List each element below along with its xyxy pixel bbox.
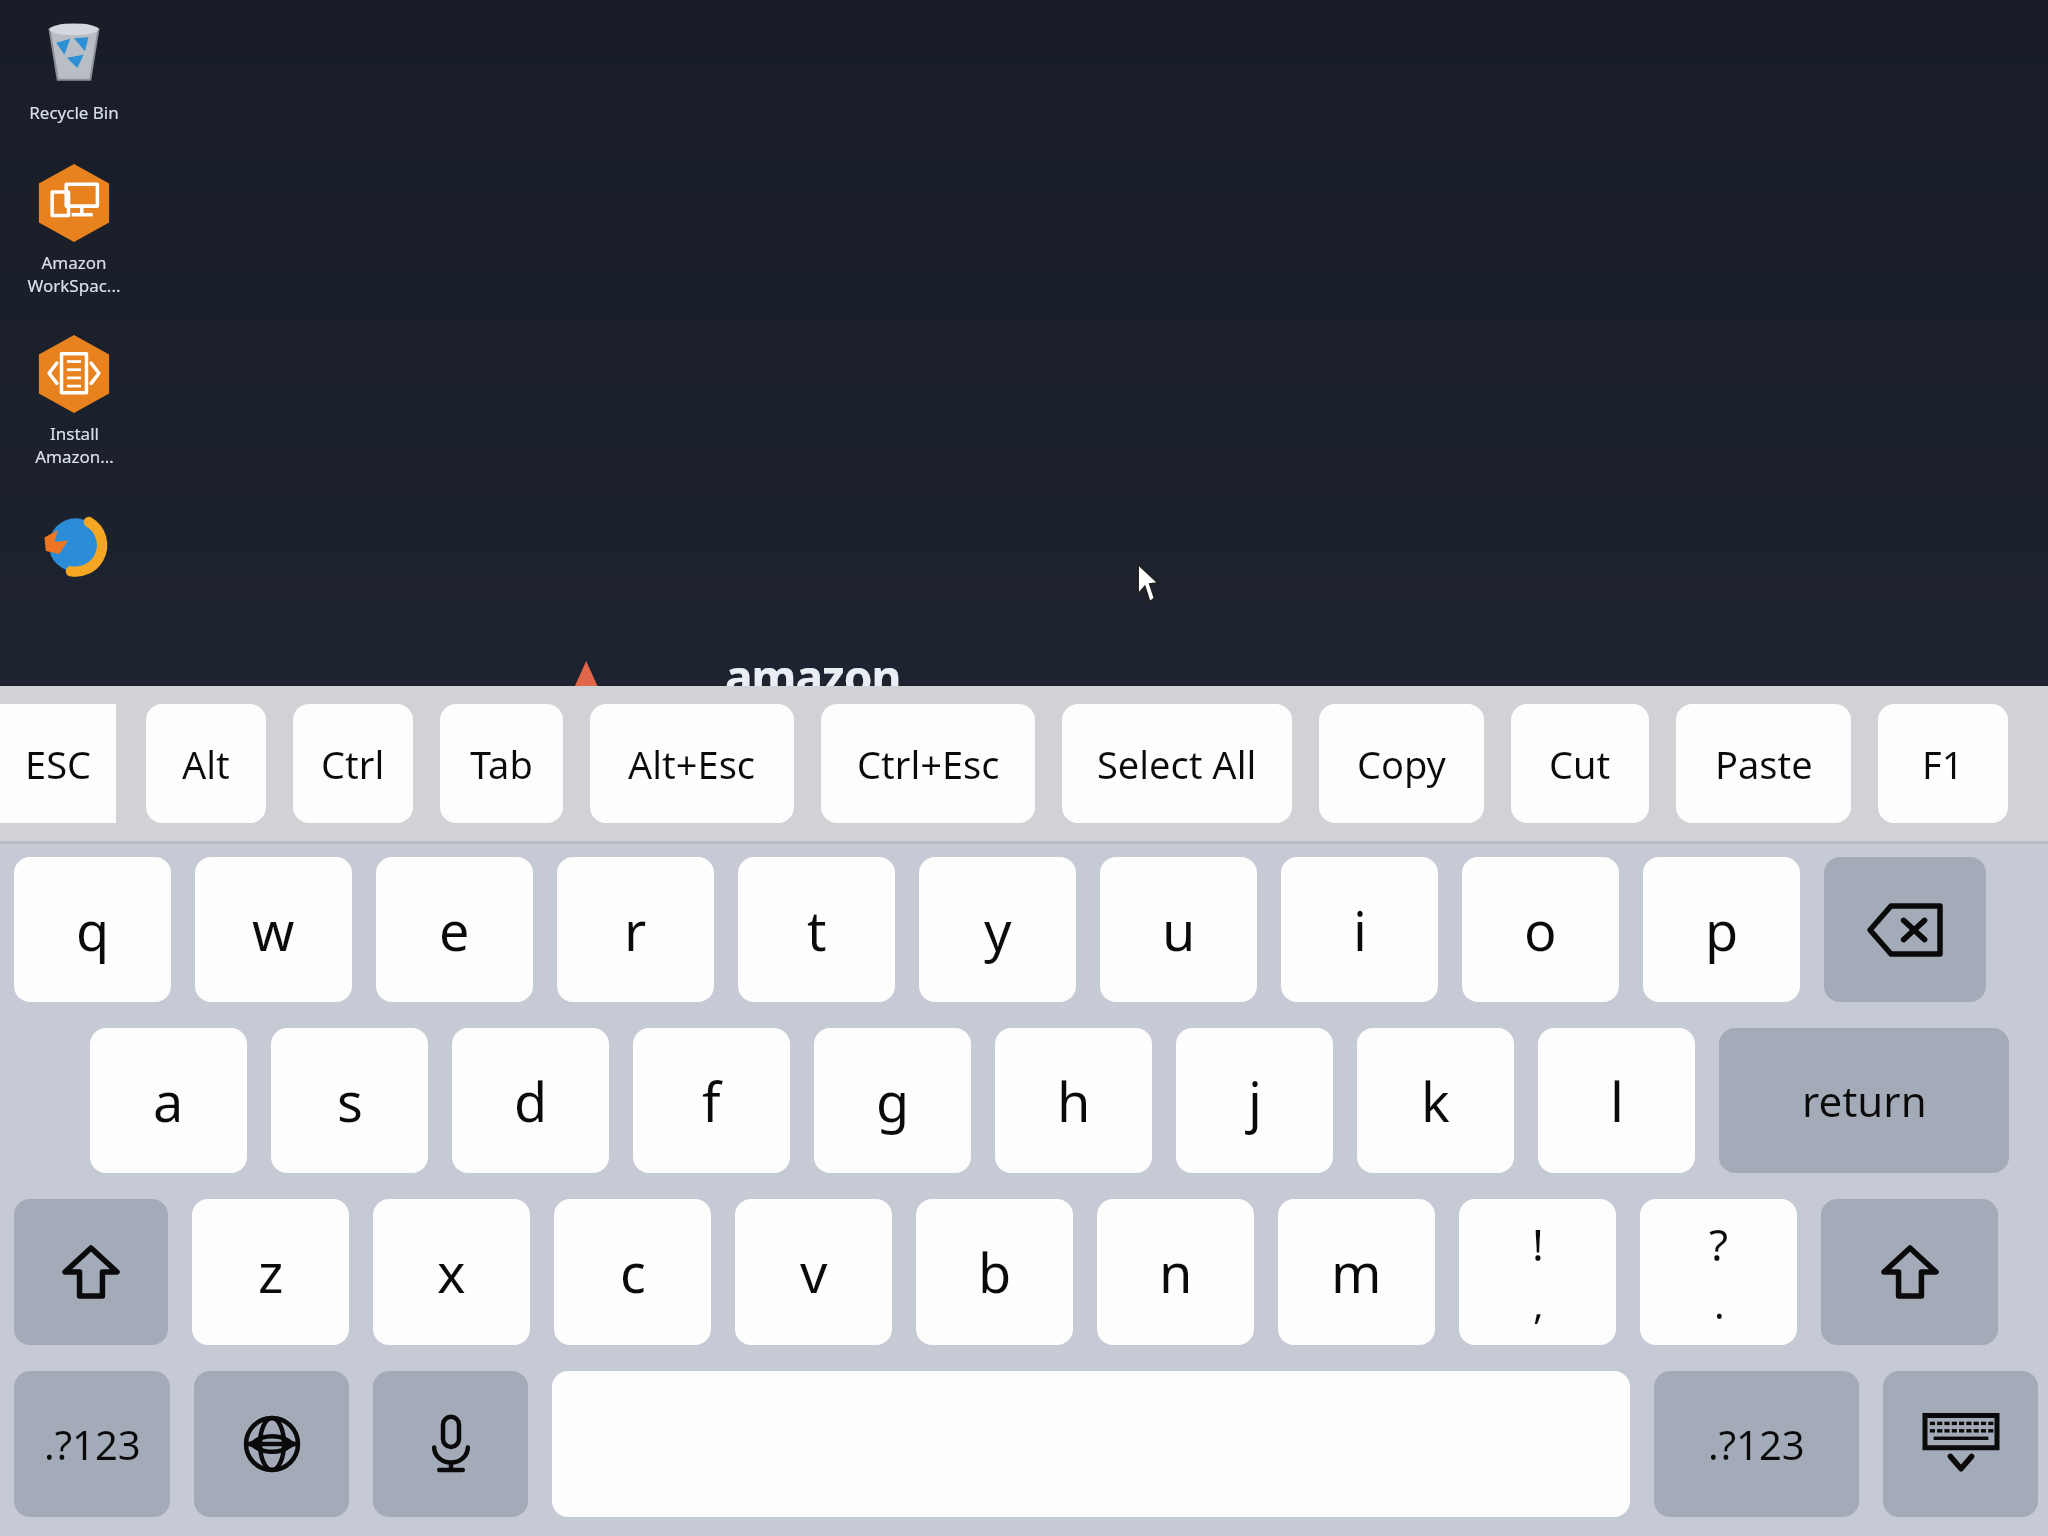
button[interactable]: e <box>376 857 533 1002</box>
staticText: Amazon <box>41 251 107 274</box>
button[interactable]: i <box>1281 857 1438 1002</box>
staticText: y <box>984 893 1012 967</box>
staticText: p <box>1705 893 1739 967</box>
button[interactable]: F1 <box>1878 704 2008 823</box>
staticText: j <box>1248 1064 1262 1138</box>
staticText: return <box>1802 1072 1927 1129</box>
button[interactable]: Select All <box>1062 704 1292 823</box>
button[interactable]: l <box>1538 1028 1695 1173</box>
staticText: Tab <box>470 738 533 790</box>
staticText: Alt+Esc <box>628 738 756 790</box>
staticText: k <box>1421 1064 1450 1138</box>
button[interactable]: Voice input <box>373 1371 528 1517</box>
staticText: c <box>620 1235 646 1309</box>
button[interactable]: y <box>919 857 1076 1002</box>
button[interactable]: k <box>1357 1028 1514 1173</box>
button[interactable]: Alt <box>146 704 266 823</box>
staticText: ? <box>1709 1214 1729 1274</box>
button[interactable]: q <box>14 857 171 1002</box>
staticText: g <box>876 1064 910 1138</box>
staticText: . <box>1714 1276 1725 1330</box>
staticText: Paste <box>1715 738 1813 790</box>
staticText: v <box>800 1235 828 1309</box>
button[interactable]: o <box>1462 857 1619 1002</box>
staticText: m <box>1331 1235 1382 1309</box>
staticText: Amazon... <box>35 445 114 468</box>
staticText: x <box>437 1235 466 1309</box>
staticText: Ctrl <box>321 738 385 790</box>
button[interactable]: Alt+Esc <box>590 704 794 823</box>
staticText: l <box>1610 1064 1624 1138</box>
staticText: s <box>337 1064 363 1138</box>
staticText: ESC <box>25 738 92 790</box>
button[interactable]: Ctrl+Esc <box>821 704 1035 823</box>
button[interactable]: return <box>1719 1028 2009 1173</box>
button[interactable]: ! <box>1459 1199 1616 1345</box>
staticText: .?123 <box>44 1417 141 1471</box>
staticText: h <box>1057 1064 1091 1138</box>
staticText: i <box>1353 893 1367 967</box>
button[interactable]: Shift <box>1821 1199 1998 1345</box>
button[interactable]: s <box>271 1028 428 1173</box>
staticText: Cut <box>1549 738 1611 790</box>
staticText: a <box>153 1064 184 1138</box>
button[interactable]: .?123 <box>1654 1371 1859 1517</box>
staticText: .?123 <box>1708 1417 1805 1471</box>
button[interactable]: Ctrl <box>293 704 413 823</box>
button[interactable]: b <box>916 1199 1073 1345</box>
staticText: , <box>1533 1276 1544 1330</box>
button[interactable]: d <box>452 1028 609 1173</box>
button[interactable]: ? <box>1640 1199 1797 1345</box>
staticText: amazon <box>725 645 901 708</box>
staticText: z <box>258 1235 284 1309</box>
button[interactable]: Cut <box>1511 704 1649 823</box>
button[interactable]: x <box>373 1199 530 1345</box>
staticText: t <box>807 893 827 967</box>
button[interactable]: w <box>195 857 352 1002</box>
button[interactable]: h <box>995 1028 1152 1173</box>
button[interactable]: z <box>192 1199 349 1345</box>
button[interactable]: t <box>738 857 895 1002</box>
staticText: o <box>1524 893 1557 967</box>
button[interactable]: m <box>1278 1199 1435 1345</box>
staticText: Copy <box>1357 738 1446 790</box>
staticText: f <box>702 1064 721 1138</box>
staticText: w <box>252 893 295 967</box>
button[interactable]: Backspace <box>1824 857 1986 1002</box>
button[interactable]: Copy <box>1319 704 1484 823</box>
button[interactable]: Change language <box>194 1371 349 1517</box>
button[interactable]: ESC <box>0 704 116 823</box>
staticText: F1 <box>1922 738 1964 790</box>
staticText: Recycle Bin <box>29 101 119 124</box>
button[interactable]: p <box>1643 857 1800 1002</box>
button[interactable]: v <box>735 1199 892 1345</box>
staticText: r <box>624 893 647 967</box>
button[interactable]: .?123 <box>14 1371 170 1517</box>
button[interactable]: a <box>90 1028 247 1173</box>
staticText: ! <box>1532 1214 1544 1274</box>
button[interactable]: Tab <box>440 704 563 823</box>
button[interactable]: g <box>814 1028 971 1173</box>
staticText: Ctrl+Esc <box>857 738 1000 790</box>
button[interactable]: Shift <box>14 1199 168 1345</box>
staticText: q <box>76 893 110 967</box>
staticText: u <box>1162 893 1196 967</box>
button[interactable]: j <box>1176 1028 1333 1173</box>
button[interactable]: r <box>557 857 714 1002</box>
button[interactable]: c <box>554 1199 711 1345</box>
staticText: e <box>439 893 470 967</box>
staticText: d <box>514 1064 548 1138</box>
button[interactable]: u <box>1100 857 1257 1002</box>
staticText: b <box>978 1235 1012 1309</box>
button[interactable]: Paste <box>1676 704 1851 823</box>
button[interactable]: n <box>1097 1199 1254 1345</box>
staticText: n <box>1159 1235 1193 1309</box>
staticText: Install <box>50 422 99 445</box>
staticText: Select All <box>1097 738 1257 790</box>
button[interactable]: f <box>633 1028 790 1173</box>
staticText: Alt <box>182 738 230 790</box>
staticText: WorkSpac... <box>27 274 121 297</box>
button[interactable]: Hide keyboard <box>1883 1371 2038 1517</box>
